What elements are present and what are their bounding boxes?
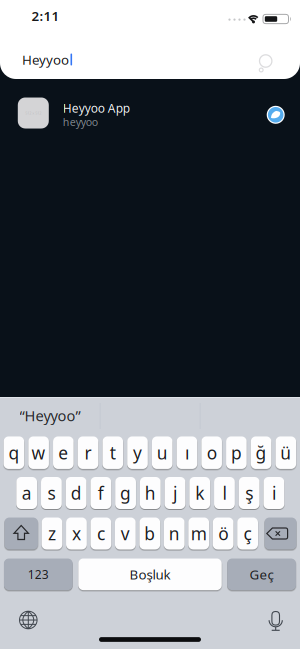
button[interactable]: o [201, 436, 222, 469]
staticText: v [121, 522, 130, 545]
staticText: p [231, 441, 242, 464]
button[interactable]: n [164, 517, 185, 549]
staticText: w [32, 441, 46, 464]
staticText: y [133, 441, 142, 464]
staticText: “Heyyoo” [19, 406, 80, 425]
button[interactable]: ğ [251, 436, 271, 469]
button[interactable]: Shift [4, 517, 38, 549]
staticText: Boşluk [129, 565, 170, 583]
staticText: x [72, 522, 81, 545]
button[interactable]: ç [237, 517, 258, 549]
button[interactable]: p [226, 436, 247, 469]
button[interactable]: Boşluk [78, 558, 222, 590]
staticText: n [169, 522, 180, 545]
button[interactable]: Dictate [261, 605, 291, 635]
button[interactable]: “Heyyoo” [0, 397, 100, 433]
staticText: Heyyoo App [63, 100, 130, 116]
button[interactable]: 123 [4, 558, 73, 590]
button[interactable]: l [214, 477, 235, 509]
button[interactable]: Delete [264, 517, 296, 549]
button[interactable]: i [263, 477, 284, 509]
staticText: r [85, 441, 92, 464]
button[interactable]: Search [253, 48, 279, 74]
button[interactable]: Next keyboard [13, 605, 43, 635]
staticText: q [8, 441, 19, 464]
staticText: d [71, 481, 82, 504]
staticText: Geç [250, 565, 274, 583]
staticText: s [47, 481, 55, 504]
staticText: 123 [28, 566, 49, 582]
button[interactable]: x [66, 517, 87, 549]
button[interactable]: m [188, 517, 209, 549]
staticText: m [191, 522, 207, 545]
staticText: h [145, 481, 156, 504]
button[interactable]: q [4, 436, 24, 469]
button[interactable]: ş [239, 477, 260, 509]
staticText: u [157, 441, 168, 464]
button[interactable]: Geç [227, 558, 296, 590]
staticText: z [48, 522, 56, 545]
button[interactable]: t [102, 436, 123, 469]
button[interactable]: f [90, 477, 111, 509]
staticText: l [222, 481, 226, 504]
button[interactable]: a [16, 477, 37, 509]
staticText: i [272, 481, 276, 504]
staticText: ğ [256, 441, 267, 464]
button[interactable]: ö [213, 517, 234, 549]
staticText: j [173, 481, 177, 504]
staticText: k [195, 481, 204, 504]
staticText: o [207, 441, 217, 464]
button[interactable]: b [139, 517, 160, 549]
staticText: heyyoo [63, 115, 98, 129]
button[interactable]: h [140, 477, 161, 509]
staticText: t [110, 441, 116, 464]
staticText: 512 x 512 [25, 110, 41, 116]
button[interactable]: y [127, 436, 148, 469]
button[interactable]: c [90, 517, 111, 549]
button[interactable]: ü [275, 436, 296, 469]
staticText: ş [245, 481, 253, 504]
staticText: g [120, 481, 131, 504]
staticText: Heyyoo [22, 51, 69, 68]
button[interactable]: ı [177, 436, 197, 469]
button[interactable]: v [115, 517, 136, 549]
button[interactable]: g [115, 477, 136, 509]
button[interactable]: w [28, 436, 49, 469]
button[interactable]: r [78, 436, 98, 469]
staticText: b [144, 522, 155, 545]
staticText: a [22, 481, 32, 504]
button[interactable]: Heyyoo [22, 44, 242, 74]
button[interactable]: s [41, 477, 62, 509]
button[interactable]: d [66, 477, 86, 509]
button[interactable]: e [53, 436, 74, 469]
button[interactable]: u [152, 436, 172, 469]
staticText: ö [218, 522, 228, 545]
staticText: c [97, 522, 105, 545]
staticText: f [98, 481, 104, 504]
button[interactable]: 512 x 512 [0, 90, 300, 136]
staticText: e [58, 441, 68, 464]
staticText: ü [280, 441, 291, 464]
staticText: 2:11 [31, 7, 59, 25]
staticText: ç [244, 522, 252, 545]
staticText: ı [185, 441, 189, 464]
button[interactable]: j [165, 477, 185, 509]
button[interactable]: z [42, 517, 62, 549]
button[interactable]: k [189, 477, 210, 509]
